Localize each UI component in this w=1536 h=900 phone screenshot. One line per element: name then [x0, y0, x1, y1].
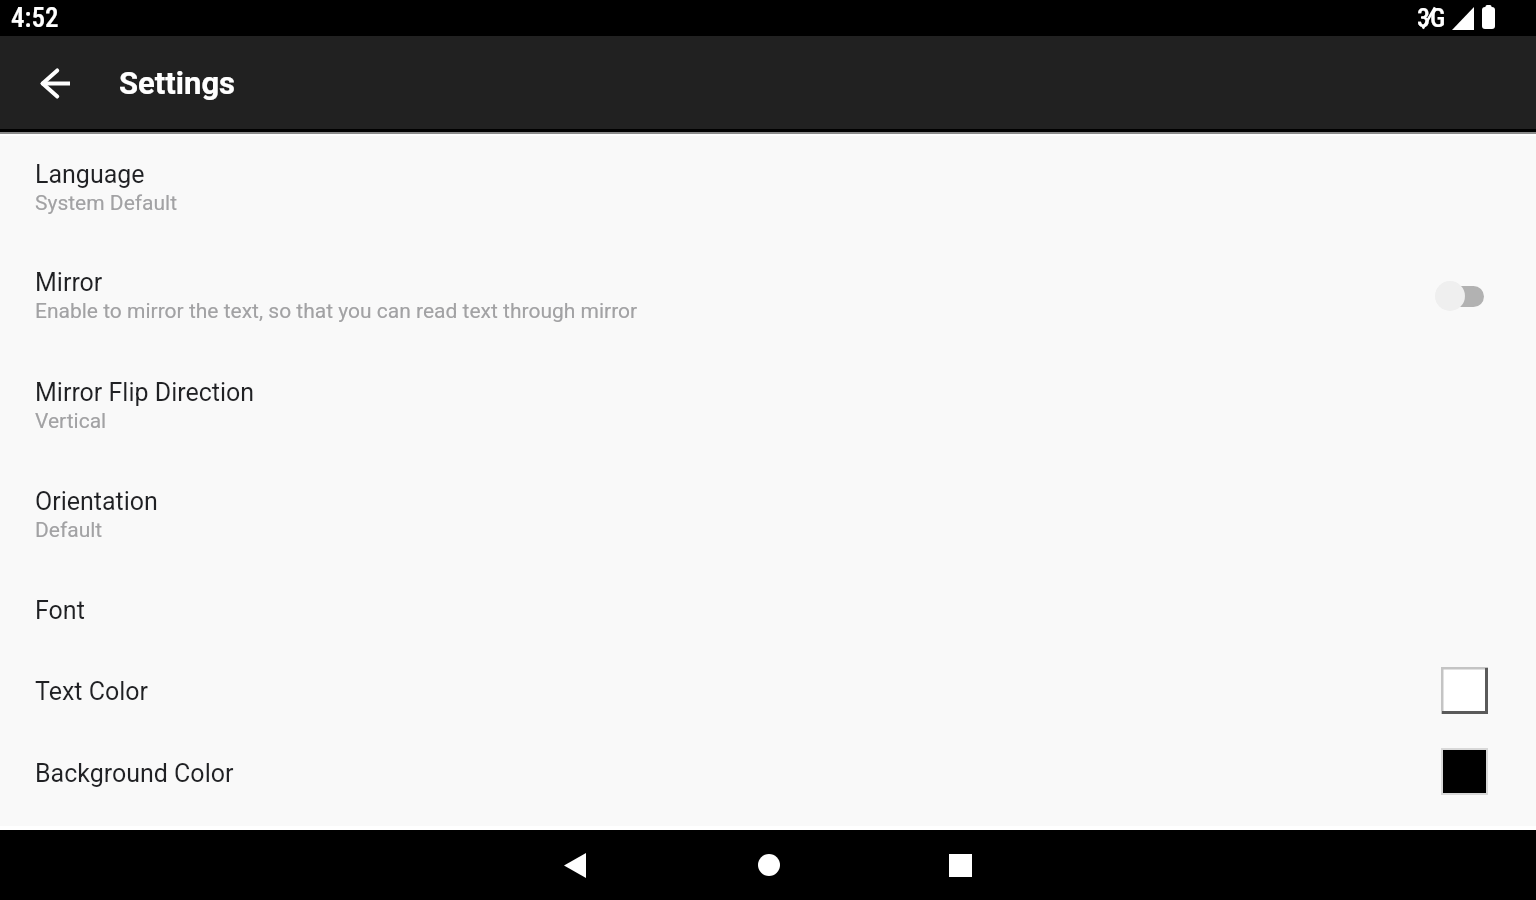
staticText: Font: [35, 596, 85, 625]
button[interactable]: Mirror toggle: [1435, 274, 1484, 318]
button[interactable]: Text Color: [0, 655, 1536, 736]
button[interactable]: Home: [729, 830, 809, 900]
staticText: 3G: [1417, 3, 1446, 33]
button[interactable]: Language: [0, 136, 1536, 244]
staticText: Orientation: [35, 487, 158, 516]
button[interactable]: Text colour swatch: [1441, 667, 1488, 714]
button[interactable]: Font: [0, 574, 1536, 655]
staticText: System Default: [35, 191, 178, 216]
button[interactable]: Back: [535, 830, 615, 900]
button[interactable]: Background colour swatch: [1441, 748, 1488, 795]
staticText: Mirror: [35, 268, 103, 297]
staticText: Vertical: [35, 409, 107, 434]
button[interactable]: Orientation: [0, 463, 1536, 574]
staticText: Default: [35, 518, 103, 543]
button[interactable]: Navigate up: [31, 59, 79, 107]
button[interactable]: Mirror: [0, 244, 1536, 354]
staticText: Enable to mirror the text, so that you c…: [35, 299, 638, 324]
staticText: Background Color: [35, 759, 234, 788]
staticText: Mirror Flip Direction: [35, 378, 255, 407]
staticText: Language: [35, 160, 145, 189]
button[interactable]: Background Color: [0, 736, 1536, 817]
button[interactable]: Mirror Flip Direction: [0, 354, 1536, 463]
button[interactable]: Recent apps: [920, 830, 1000, 900]
staticText: Settings: [119, 65, 236, 101]
staticText: 4:52: [11, 2, 59, 34]
staticText: Text Color: [35, 677, 149, 706]
